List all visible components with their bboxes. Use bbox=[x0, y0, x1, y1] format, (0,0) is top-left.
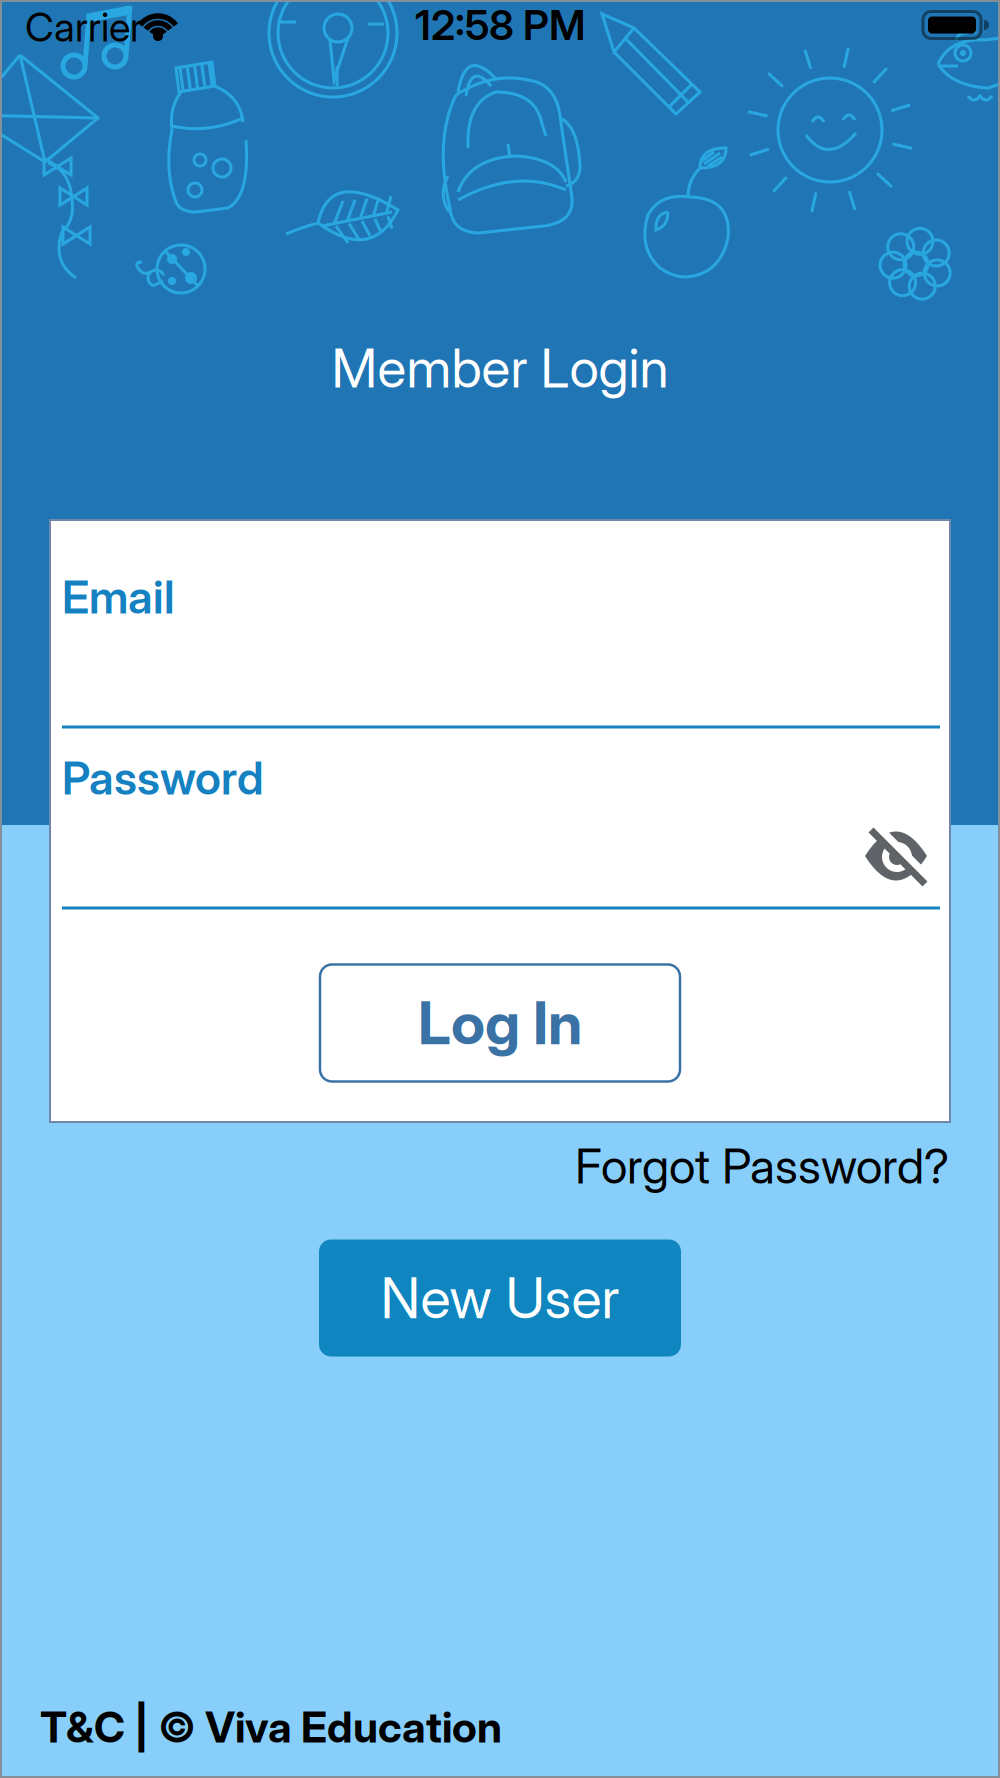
staticText: Carrier bbox=[25, 3, 143, 51]
button[interactable]: Show password bbox=[861, 820, 931, 890]
staticText: Forgot Password? bbox=[575, 1137, 949, 1195]
button[interactable]: Log In bbox=[320, 964, 680, 1081]
staticText: Log In bbox=[418, 987, 582, 1058]
button[interactable]: New User bbox=[319, 1239, 681, 1356]
staticText: 12:58 PM bbox=[415, 0, 585, 50]
staticText: Password bbox=[62, 751, 264, 805]
staticText: T&C | © Viva Education bbox=[40, 1701, 502, 1753]
button[interactable]: Forgot Password? bbox=[429, 1137, 949, 1195]
staticText: New User bbox=[380, 1264, 619, 1332]
staticText: Email bbox=[62, 570, 175, 624]
staticText: Member Login bbox=[331, 336, 668, 400]
button[interactable]: T&C | © Viva Education bbox=[40, 1701, 640, 1753]
